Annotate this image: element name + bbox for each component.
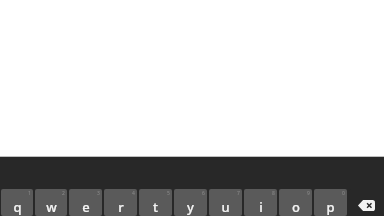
staticText: 7	[237, 190, 240, 197]
button[interactable]: 7	[209, 189, 242, 216]
button[interactable]: 3	[69, 189, 102, 216]
staticText: u	[221, 198, 230, 216]
staticText: t	[153, 198, 158, 216]
staticText: i	[259, 198, 263, 216]
staticText: o	[292, 198, 300, 216]
staticText: 2	[62, 190, 65, 197]
staticText: 1	[28, 190, 31, 197]
staticText: 6	[202, 190, 205, 197]
staticText: 4	[132, 190, 135, 197]
staticText: e	[82, 198, 90, 216]
button[interactable]: 9	[279, 189, 312, 216]
button[interactable]: Backspace	[349, 189, 383, 216]
staticText: 5	[167, 190, 170, 197]
staticText: p	[326, 198, 335, 216]
staticText: 3	[97, 190, 100, 197]
button[interactable]: 0	[314, 189, 347, 216]
staticText: w	[46, 198, 57, 216]
staticText: r	[118, 198, 124, 216]
button[interactable]: 5	[139, 189, 172, 216]
button[interactable]: 2	[35, 189, 67, 216]
staticText: 8	[272, 190, 275, 197]
staticText: q	[13, 198, 22, 216]
staticText: 0	[342, 190, 345, 197]
button[interactable]: 8	[244, 189, 277, 216]
button[interactable]: 6	[174, 189, 207, 216]
button[interactable]: 1	[1, 189, 33, 216]
button[interactable]: 4	[104, 189, 137, 216]
staticText: y	[187, 198, 194, 216]
staticText: 9	[307, 190, 310, 197]
